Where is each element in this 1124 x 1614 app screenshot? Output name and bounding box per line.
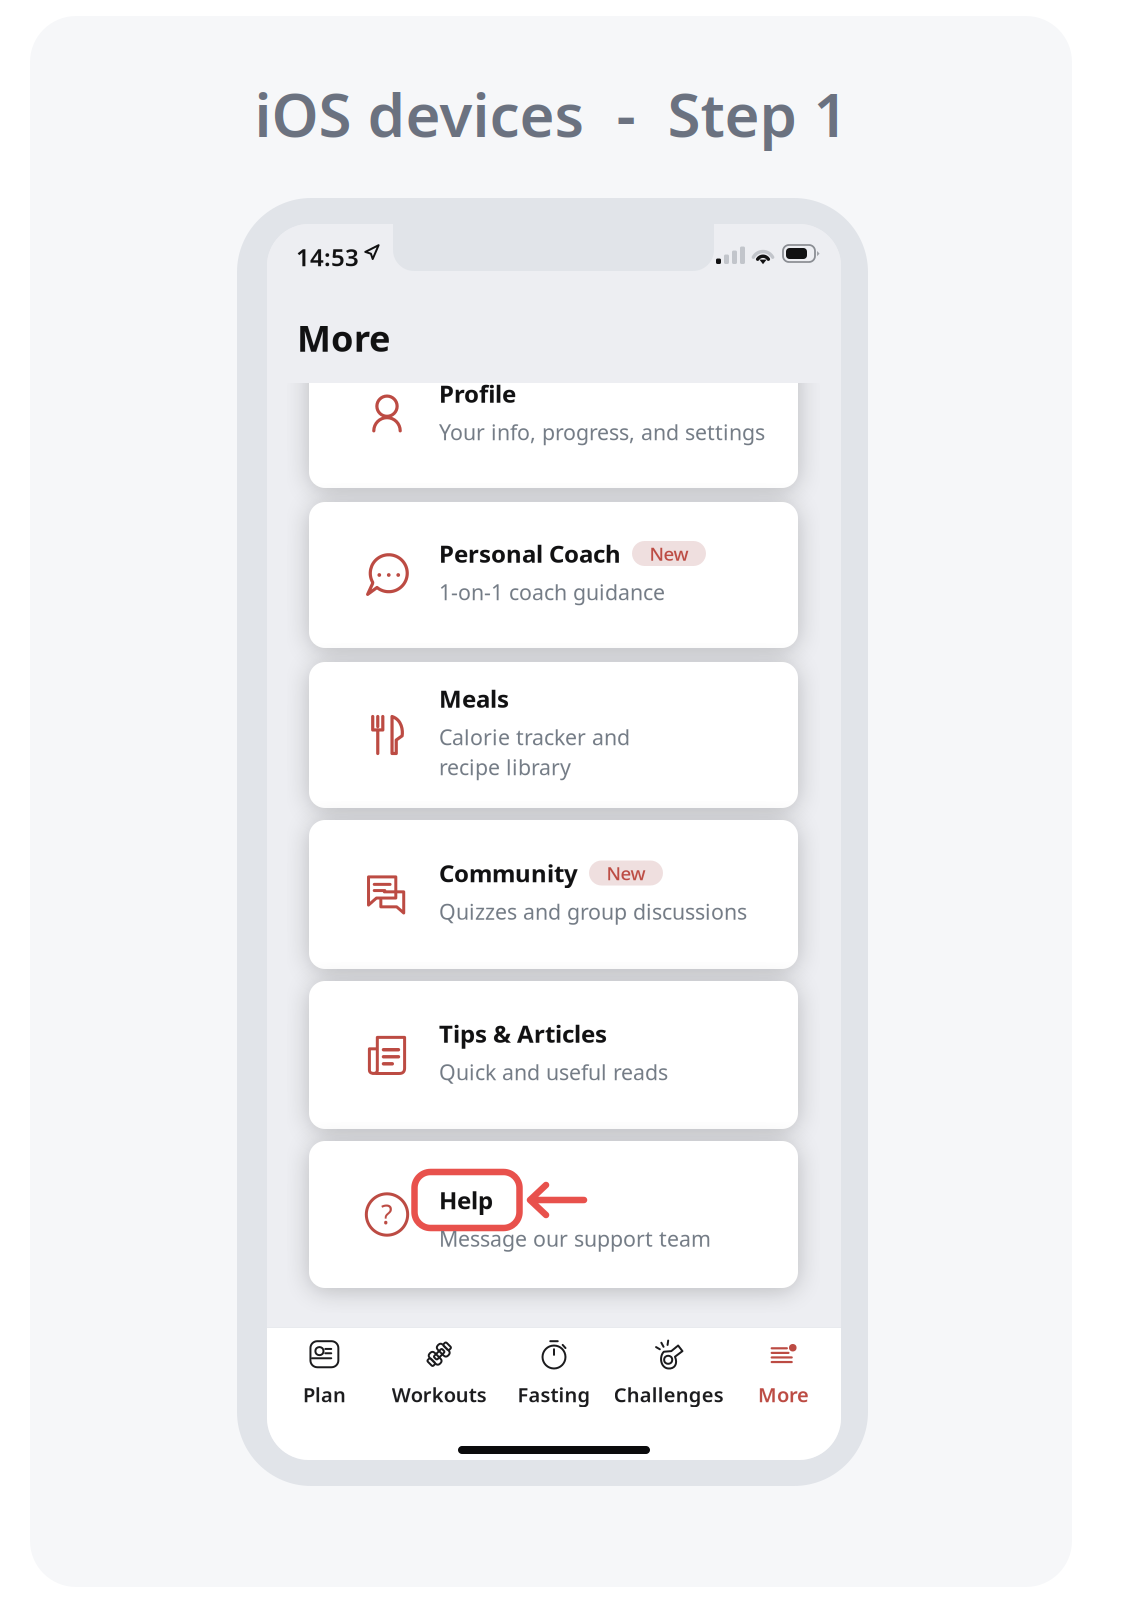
staticText: Help <box>439 1184 493 1216</box>
button[interactable]: Plan <box>267 1335 382 1411</box>
staticText: New <box>606 861 645 885</box>
button[interactable]: Personal Coach <box>309 502 798 662</box>
staticText: Quizzes and group discussions <box>439 897 747 926</box>
button[interactable]: Workouts <box>382 1335 497 1411</box>
staticText: More <box>297 314 390 362</box>
staticText: 1-on-1 coach guidance <box>439 578 665 606</box>
button[interactable]: Profile <box>309 342 798 502</box>
button[interactable]: ? <box>309 1141 798 1288</box>
staticText: Message our support team <box>439 1224 711 1253</box>
staticText: Quick and useful reads <box>439 1058 668 1086</box>
staticText: Personal Coach <box>439 538 621 569</box>
staticText: Challenges <box>614 1381 724 1408</box>
button[interactable]: Tips & Articles <box>309 981 798 1141</box>
button[interactable]: More <box>726 1335 841 1411</box>
staticText: iOS devices - Step 1 <box>254 74 847 154</box>
staticText: Calorie tracker and <box>439 723 630 751</box>
staticText: Tips & Articles <box>439 1018 607 1049</box>
button[interactable]: Meals <box>309 662 798 820</box>
button[interactable]: Community <box>309 820 798 981</box>
staticText: Plan <box>303 1381 346 1408</box>
staticText: Profile <box>439 378 516 409</box>
button[interactable]: Fasting <box>497 1335 611 1411</box>
staticText: Your info, progress, and settings <box>439 418 765 446</box>
staticText: More <box>758 1381 809 1408</box>
staticText: Meals <box>439 683 509 714</box>
staticText: ? <box>381 1196 393 1232</box>
staticText: recipe library <box>439 753 571 781</box>
staticText: Workouts <box>392 1381 487 1408</box>
staticText: Community <box>439 857 578 889</box>
staticText: New <box>649 541 688 566</box>
button[interactable]: Challenges <box>611 1335 726 1411</box>
staticText: Fasting <box>517 1381 590 1408</box>
staticText: 14:53 <box>296 241 359 273</box>
